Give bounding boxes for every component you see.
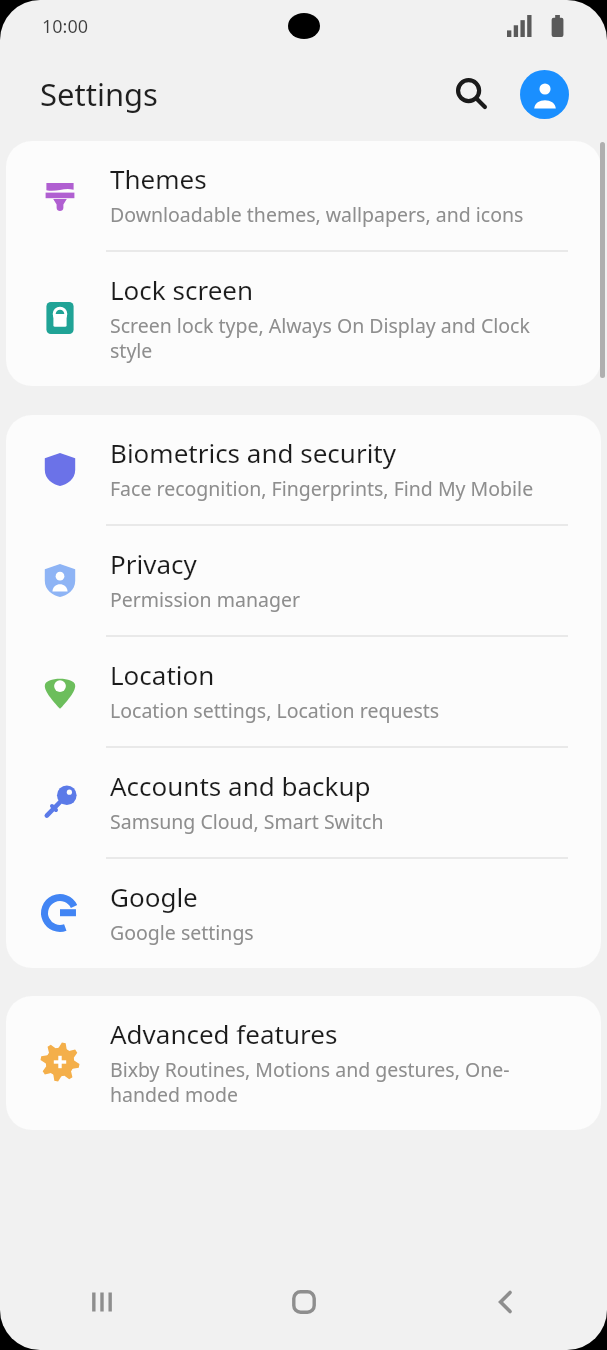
staticText: Downloadable themes, wallpapers, and ico… [110, 201, 524, 228]
button[interactable]: Themes [6, 141, 601, 250]
staticText: Themes [110, 161, 207, 196]
button[interactable]: Search [446, 68, 498, 120]
staticText: Location [110, 657, 215, 692]
staticText: Accounts and backup [110, 768, 371, 803]
staticText: Privacy [110, 546, 197, 581]
button[interactable]: Google [6, 859, 601, 968]
staticText: Advanced features [110, 1016, 338, 1051]
button[interactable]: Biometrics and security [6, 415, 601, 524]
staticText: Biometrics and security [110, 435, 397, 470]
button[interactable]: Privacy [6, 526, 601, 635]
staticText: Lock screen [110, 272, 254, 307]
staticText: Samsung Cloud, Smart Switch [110, 808, 384, 835]
button[interactable]: Lock screen [6, 252, 601, 386]
staticText: 10:00 [42, 14, 89, 39]
staticText: Face recognition, Fingerprints, Find My … [110, 475, 534, 502]
button[interactable]: Account [520, 70, 569, 119]
staticText: Permission manager [110, 586, 300, 613]
button[interactable]: Back [405, 1266, 607, 1338]
button[interactable]: Advanced features [6, 996, 601, 1130]
staticText: Settings [40, 73, 158, 115]
button[interactable]: Home [203, 1266, 405, 1338]
staticText: Bixby Routines, Motions and gestures, On… [110, 1056, 571, 1108]
staticText: Google [110, 879, 198, 914]
button[interactable]: Location [6, 637, 601, 746]
button[interactable]: Recents [0, 1266, 203, 1338]
staticText: Screen lock type, Always On Display and … [110, 312, 571, 364]
button[interactable]: Accounts and backup [6, 748, 601, 857]
staticText: Google settings [110, 919, 254, 946]
staticText: Location settings, Location requests [110, 697, 440, 724]
